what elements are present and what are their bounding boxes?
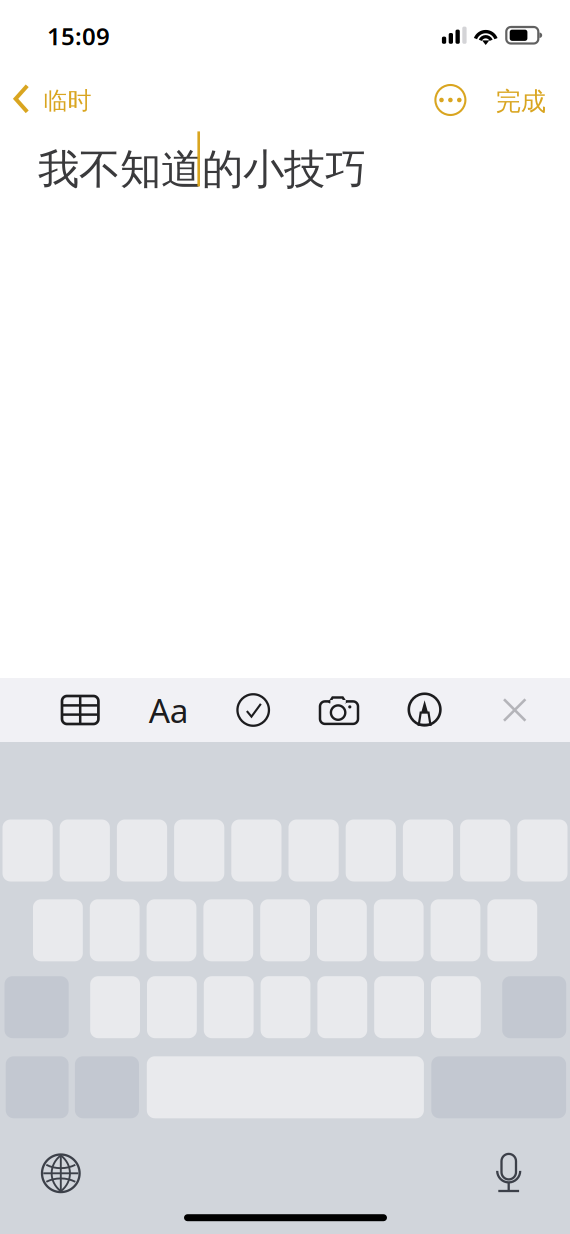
button[interactable]: Text format [132,678,206,742]
staticText: 的小技巧 [202,144,366,195]
button[interactable]: 临时 [5,79,99,119]
button[interactable]: Checklist [216,678,290,742]
button[interactable]: Next keyboard [32,1144,90,1202]
button[interactable]: Hide keyboard [478,678,552,742]
staticText: 完成 [496,86,546,117]
staticText: 我不知道 [38,144,202,195]
button[interactable]: More options [427,77,473,123]
button[interactable]: 完成 [486,80,556,123]
staticText: Aa [149,688,189,732]
staticText: 临时 [43,86,91,116]
button[interactable]: Table [43,678,117,742]
button[interactable]: Dictation [483,1143,535,1204]
button[interactable]: Camera [302,678,376,742]
button[interactable]: Markup [388,678,462,742]
staticText: 15:09 [47,20,110,52]
